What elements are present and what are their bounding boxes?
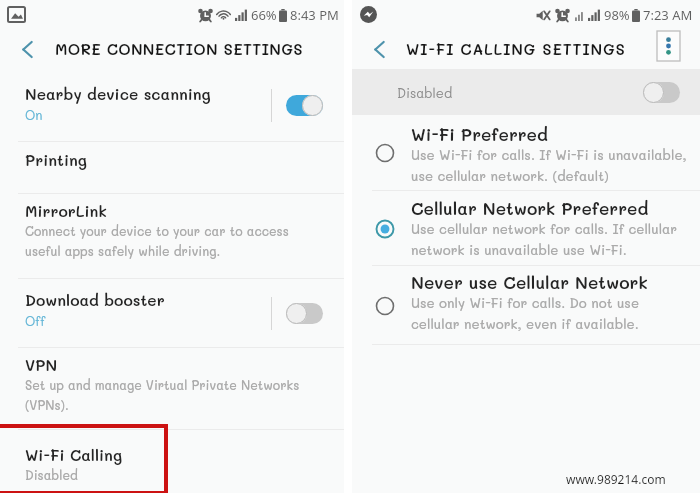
staticText: Cellular Network Preferred <box>411 197 649 219</box>
staticText: www.989214.com <box>566 471 666 487</box>
staticText: Wi-Fi Preferred <box>411 123 548 145</box>
staticText: 8:43 PM <box>290 6 339 24</box>
staticText: Use only Wi-Fi for calls. Do not use cel… <box>411 294 640 332</box>
button[interactable]: VPN <box>0 348 344 429</box>
button[interactable]: More options <box>657 31 680 61</box>
staticText: On <box>25 106 43 123</box>
staticText: Printing <box>25 150 87 170</box>
staticText: MirrorLink <box>25 201 107 221</box>
staticText: Set up and manage Virtual Private Networ… <box>25 377 300 413</box>
button[interactable]: Printing <box>0 142 344 193</box>
staticText: Disabled <box>25 467 78 483</box>
staticText: Use cellular network for calls. If cellu… <box>411 220 678 258</box>
staticText: Disabled <box>397 84 453 101</box>
staticText: Download booster <box>25 290 165 310</box>
button[interactable]: Wi-Fi Preferred <box>352 115 700 190</box>
button[interactable]: Never use Cellular Network <box>352 266 700 344</box>
button[interactable]: Download booster <box>0 279 344 347</box>
staticText: 98% <box>604 6 630 24</box>
button[interactable]: Back <box>12 34 42 64</box>
button[interactable]: Wi-Fi Calling <box>0 430 344 493</box>
staticText: MORE CONNECTION SETTINGS <box>55 39 303 59</box>
staticText: Nearby device scanning <box>25 84 211 104</box>
staticText: Off <box>25 312 46 329</box>
staticText: Never use Cellular Network <box>411 271 648 293</box>
staticText: Connect your device to your car to acces… <box>25 223 289 259</box>
staticText: Wi-Fi Calling <box>25 445 123 465</box>
button[interactable]: Cellular Network Preferred <box>352 191 700 265</box>
button[interactable]: Nearby device scanning <box>0 69 344 141</box>
button[interactable]: MirrorLink <box>0 194 344 278</box>
button[interactable]: Back <box>364 34 394 64</box>
staticText: Use Wi-Fi for calls. If Wi-Fi is unavail… <box>411 146 687 184</box>
staticText: WI-FI CALLING SETTINGS <box>406 39 626 59</box>
staticText: 66% <box>251 6 277 24</box>
staticText: 7:23 AM <box>643 6 693 24</box>
staticText: VPN <box>25 355 58 375</box>
button[interactable]: Disabled <box>352 69 700 115</box>
